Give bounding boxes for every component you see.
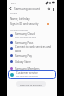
staticText: Samsung Pay [15, 54, 32, 58]
button[interactable]: Galaxy Store [7, 58, 57, 65]
button[interactable]: Customer service [8, 70, 56, 79]
staticText: Sign-in ID and security [10, 22, 39, 26]
button[interactable]: Samsung Pay [7, 52, 57, 59]
staticText: Connect to web services and apps [15, 45, 57, 52]
button[interactable]: Connect to web services and apps [7, 45, 57, 52]
button[interactable]: Sign out of account [16, 81, 46, 87]
button[interactable]: More options [51, 7, 55, 11]
staticText: Profile [10, 12, 17, 15]
button[interactable]: Samsung Pass [7, 39, 57, 46]
staticText: Sign out of account [20, 83, 42, 86]
staticText: Samsung Pass [15, 41, 34, 45]
staticText: Samsung Members [15, 67, 40, 71]
staticText: Customer service [16, 71, 38, 75]
button[interactable]: Search [46, 6, 51, 11]
staticText: Sync and back up data [15, 36, 37, 39]
staticText: Name, birthday [10, 17, 30, 21]
button[interactable]: Samsung Members [7, 65, 57, 72]
staticText: Samsung Cloud [15, 32, 35, 36]
button[interactable]: Sign-in ID and security [7, 21, 57, 26]
button[interactable]: Samsung Cloud [7, 32, 57, 39]
staticText: Account settings [10, 29, 28, 32]
staticText: Get help with Samsung [16, 75, 38, 78]
staticText: 9:41 [11, 1, 16, 4]
staticText: Samsung account [14, 7, 40, 11]
staticText: Galaxy Store [15, 60, 31, 64]
button[interactable]: Navigate up [8, 6, 13, 11]
button[interactable]: Name, birthday [7, 16, 57, 21]
